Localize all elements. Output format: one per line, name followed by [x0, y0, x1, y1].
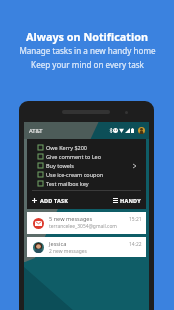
staticText: HANDY	[120, 197, 141, 204]
staticText: Buy towels	[46, 162, 74, 169]
button[interactable]: Owe Kerry $200	[27, 143, 146, 152]
staticText: Owe Kerry $200	[46, 144, 88, 151]
button[interactable]: HANDY	[113, 195, 141, 206]
button[interactable]: Use ice-cream coupon	[27, 170, 146, 179]
button[interactable]: Jessica	[27, 237, 146, 257]
button[interactable]: Test mailbox key	[27, 179, 146, 188]
button[interactable]: 5 new messages	[27, 212, 146, 234]
staticText: 2 new messages	[49, 248, 87, 255]
staticText: Jessica	[49, 240, 67, 248]
button[interactable]: Give comment to Leo	[27, 152, 146, 161]
staticText: Manage tasks in a new handy home Keep yo…	[19, 45, 156, 70]
button[interactable]: ADD TASK	[32, 195, 69, 206]
staticText: 15:21	[129, 216, 142, 223]
staticText: 14:22	[129, 241, 142, 248]
staticText: AT&T	[29, 127, 43, 135]
staticText: ADD TASK	[40, 197, 69, 204]
staticText: Test mailbox key	[46, 180, 89, 187]
staticText: 5 new messages	[49, 215, 93, 223]
staticText: Give comment to Leo	[46, 153, 101, 160]
staticText: Always on Notification	[26, 29, 148, 44]
staticText: terrancelee_3054@gmail.com	[49, 223, 117, 230]
button[interactable]: Buy towels	[27, 161, 146, 170]
staticText: Use ice-cream coupon	[46, 171, 104, 178]
